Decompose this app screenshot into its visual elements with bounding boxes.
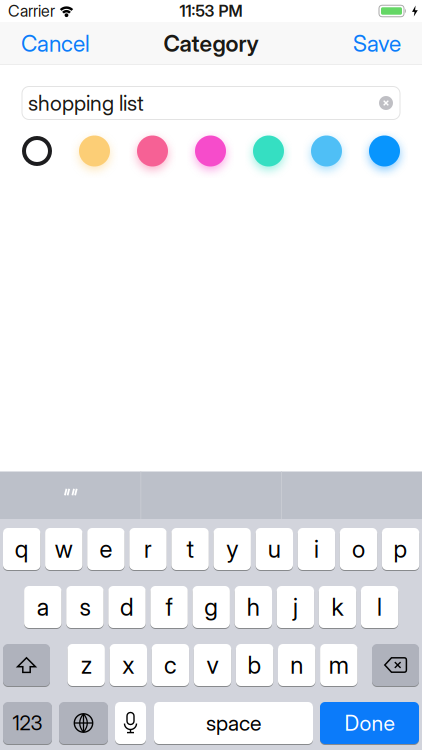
staticText: n [290,650,303,679]
staticText: a [37,592,49,621]
button[interactable]: f [150,585,188,628]
staticText: 11:53 PM [179,1,242,21]
staticText: j [293,592,298,621]
staticText: b [248,650,262,679]
staticText: p [394,534,408,563]
button[interactable]: Shift [3,643,50,686]
staticText: r [144,534,152,563]
button[interactable]: y [213,527,251,570]
staticText: z [81,650,92,679]
button[interactable]: z [67,643,105,686]
staticText: l [377,592,382,621]
button[interactable]: v [194,643,231,686]
button[interactable]: l [361,585,398,628]
button[interactable]: i [298,527,335,570]
button[interactable]: n [278,643,315,686]
staticText: k [331,592,343,621]
staticText: Carrier [8,1,55,21]
button[interactable]: Color [369,135,400,166]
staticText: s [79,592,90,621]
staticText: e [99,534,112,563]
staticText: o [352,534,365,563]
button[interactable]: o [340,527,377,570]
staticText: h [247,592,260,621]
staticText: shopping list [28,90,144,116]
staticText: Done [344,710,394,736]
staticText: Save [353,30,401,57]
button[interactable]: space [154,701,313,744]
button[interactable]: Color [253,135,284,166]
staticText: q [15,534,29,563]
button[interactable]: Clear text [379,96,393,110]
button[interactable]: t [171,527,209,570]
button[interactable]: a [24,585,61,628]
button[interactable]: x [110,643,147,686]
staticText: m [329,650,349,679]
staticText: g [204,592,218,621]
staticText: space [206,710,261,736]
button[interactable]: Quote suggestion [0,471,140,519]
button[interactable]: Color [311,135,342,166]
button[interactable]: 123 [3,701,52,744]
button[interactable]: Done [320,701,419,744]
button[interactable]: Color [79,135,110,166]
button[interactable]: Dictate [115,701,146,744]
button[interactable]: r [129,527,167,570]
button[interactable]: q [3,527,40,570]
button[interactable]: d [108,585,146,628]
button[interactable]: e [87,527,125,570]
button[interactable]: j [277,585,314,628]
button[interactable]: g [192,585,230,628]
button[interactable]: No color [22,136,52,166]
button[interactable]: c [152,643,189,686]
button[interactable]: w [45,527,82,570]
staticText: Category [163,30,258,57]
button[interactable]: Cancel [21,30,90,57]
staticText: x [122,650,134,679]
staticText: t [187,534,194,563]
button[interactable]: k [319,585,356,628]
staticText: w [55,534,73,563]
staticText: i [314,534,319,563]
button[interactable]: Color [137,135,168,166]
staticText: y [226,534,238,563]
staticText: c [164,650,177,679]
staticText: d [120,592,134,621]
button[interactable]: Next keyboard [59,701,108,744]
staticText: u [268,534,281,563]
button[interactable]: Save [353,30,401,57]
staticText: Cancel [21,30,90,57]
button[interactable]: h [235,585,272,628]
button[interactable]: Color [195,135,226,166]
button[interactable]: s [66,585,104,628]
staticText: f [166,592,173,621]
button[interactable]: b [236,643,273,686]
button[interactable]: p [382,527,419,570]
button[interactable]: Delete [372,643,419,686]
button[interactable]: u [256,527,293,570]
staticText: 123 [12,711,42,735]
staticText: v [206,650,218,679]
button[interactable]: m [320,643,357,686]
